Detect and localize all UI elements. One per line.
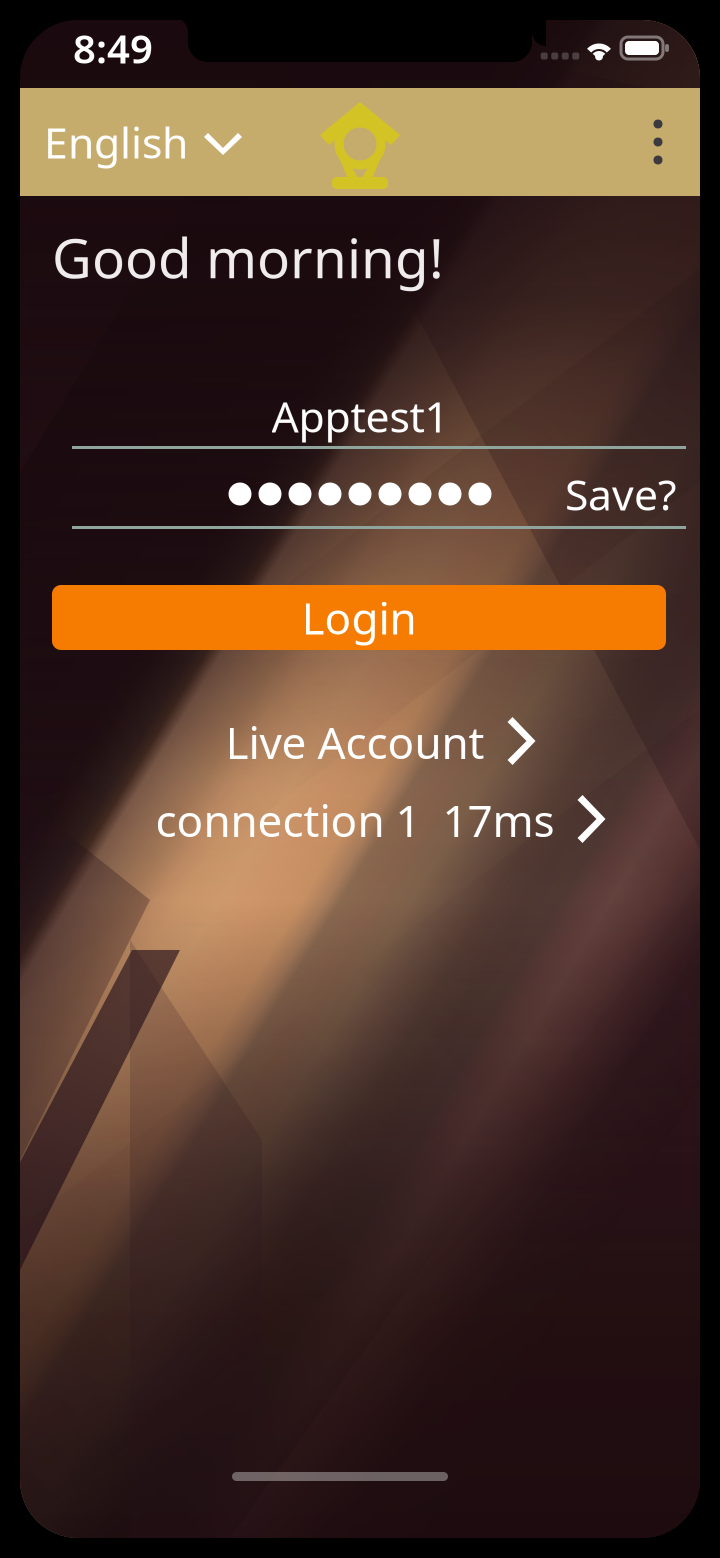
button[interactable]: More options xyxy=(634,104,682,180)
staticText: Login xyxy=(301,588,416,647)
button[interactable]: Login xyxy=(52,585,666,650)
staticText: Save? xyxy=(565,466,677,522)
button[interactable]: English xyxy=(44,106,304,178)
staticText: English xyxy=(44,114,188,170)
staticText: 8:49 xyxy=(73,21,153,74)
button[interactable]: connection 1 17ms xyxy=(155,792,604,848)
staticText: connection 1 17ms xyxy=(155,791,554,849)
button[interactable]: Save? xyxy=(556,468,686,520)
staticText: Live Account xyxy=(225,713,484,771)
staticText: Good morning! xyxy=(52,221,444,293)
button[interactable]: Live Account xyxy=(225,714,534,770)
staticText: Apptest1 xyxy=(271,388,448,444)
